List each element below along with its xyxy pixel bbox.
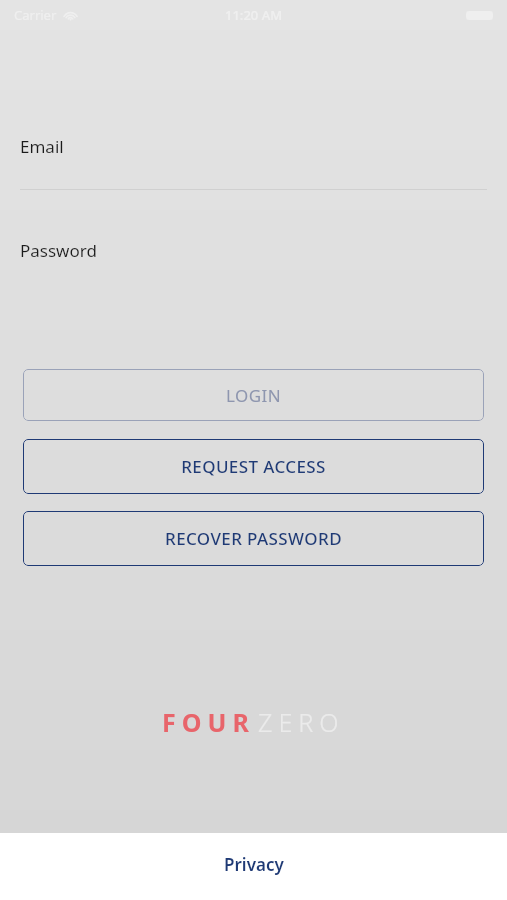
staticText: Carrier bbox=[14, 6, 57, 24]
button[interactable]: Privacy bbox=[0, 833, 507, 900]
button[interactable]: REQUEST ACCESS bbox=[23, 439, 484, 494]
staticText: RECOVER PASSWORD bbox=[165, 527, 342, 550]
staticText: REQUEST ACCESS bbox=[181, 455, 326, 478]
staticText: Privacy bbox=[224, 853, 284, 876]
button[interactable]: RECOVER PASSWORD bbox=[23, 511, 484, 566]
staticText: 11:20 AM bbox=[225, 6, 283, 24]
staticText: ZERO bbox=[258, 705, 345, 739]
button[interactable]: Email bbox=[0, 134, 507, 158]
staticText: Password bbox=[20, 239, 97, 262]
staticText: FOUR bbox=[162, 705, 255, 739]
button[interactable]: LOGIN bbox=[23, 369, 484, 421]
button[interactable]: Password bbox=[0, 238, 507, 262]
staticText: LOGIN bbox=[226, 384, 281, 407]
staticText: Email bbox=[20, 135, 64, 158]
